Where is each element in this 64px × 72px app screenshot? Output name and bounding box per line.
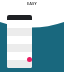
button[interactable]	[7, 60, 32, 68]
button[interactable]	[27, 57, 32, 62]
button[interactable]	[7, 52, 32, 60]
staticText: EASY	[27, 1, 37, 6]
